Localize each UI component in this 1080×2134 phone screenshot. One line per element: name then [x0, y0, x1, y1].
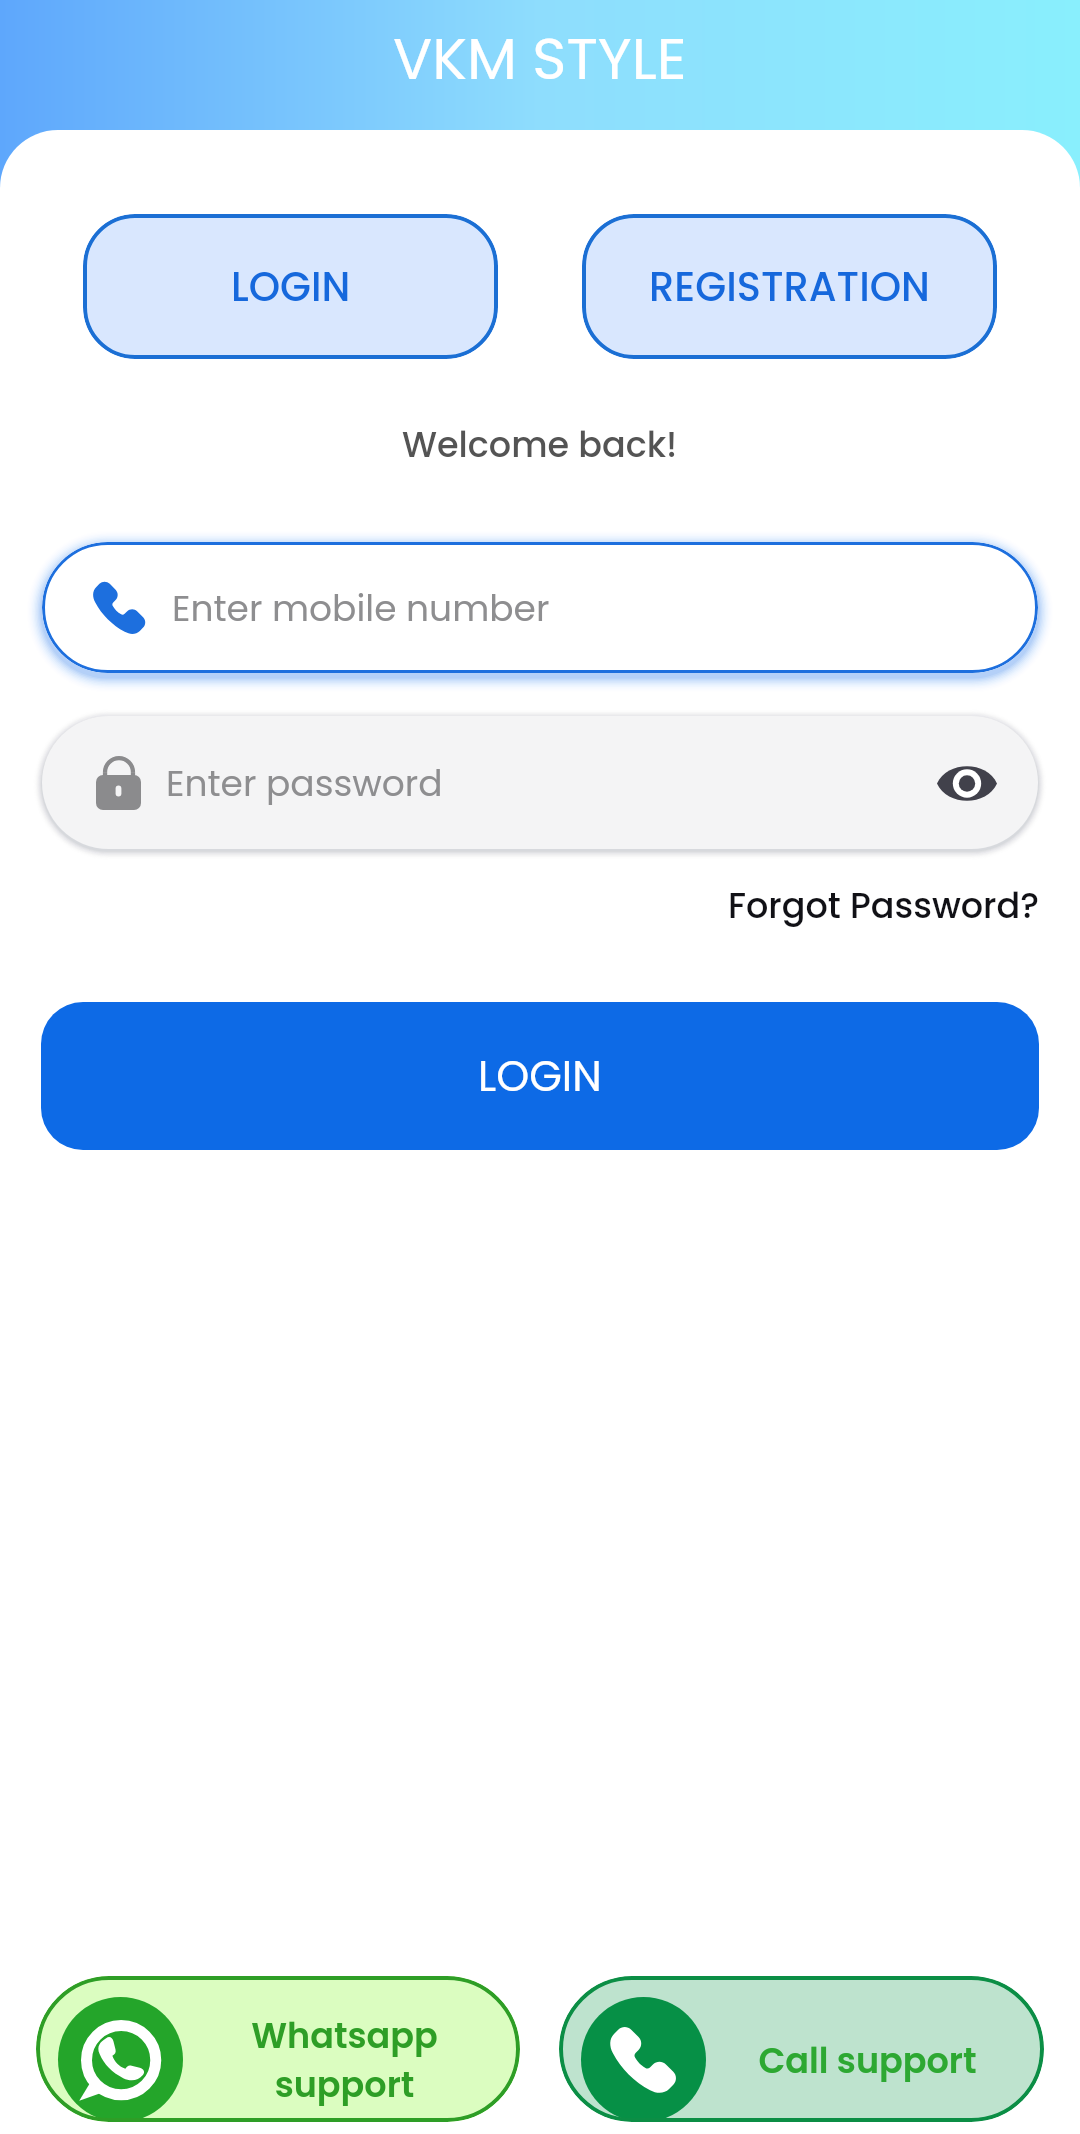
staticText: Enter password: [166, 758, 443, 808]
button[interactable]: Show password: [931, 747, 1003, 819]
button[interactable]: Call support: [559, 1976, 1044, 2122]
button[interactable]: LOGIN: [83, 214, 498, 359]
staticText: LOGIN: [478, 1047, 602, 1106]
staticText: Enter mobile number: [172, 583, 550, 633]
staticText: VKM STYLE: [393, 18, 687, 99]
button[interactable]: Forgot Password?: [728, 881, 1040, 930]
button[interactable]: REGISTRATION: [582, 214, 997, 359]
staticText: Forgot Password?: [728, 881, 1040, 930]
button[interactable]: Whatsapp support: [36, 1976, 520, 2122]
staticText: Call support: [758, 2036, 977, 2085]
staticText: Welcome back!: [402, 420, 678, 469]
staticText: REGISTRATION: [649, 259, 930, 315]
button[interactable]: LOGIN: [41, 1002, 1039, 1150]
button[interactable]: Enter mobile number: [42, 542, 1038, 673]
staticText: LOGIN: [231, 259, 351, 315]
staticText: Whatsapp support: [251, 2011, 438, 2109]
button[interactable]: Enter password: [42, 716, 1038, 849]
